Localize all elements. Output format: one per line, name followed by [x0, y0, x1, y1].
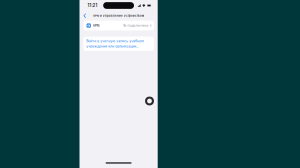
staticText: VPN	[93, 23, 100, 28]
staticText: VPN и управление устройством	[93, 14, 144, 17]
staticText: Войти в учетную запись учебного учрежден…	[86, 39, 144, 48]
button[interactable]: Back	[79, 12, 88, 20]
button[interactable]: Войти в учетную запись учебного учрежден…	[83, 37, 154, 51]
button[interactable]: VPN	[83, 21, 154, 30]
staticText: Не подключено	[122, 23, 148, 27]
staticText: 11:21	[87, 3, 97, 8]
